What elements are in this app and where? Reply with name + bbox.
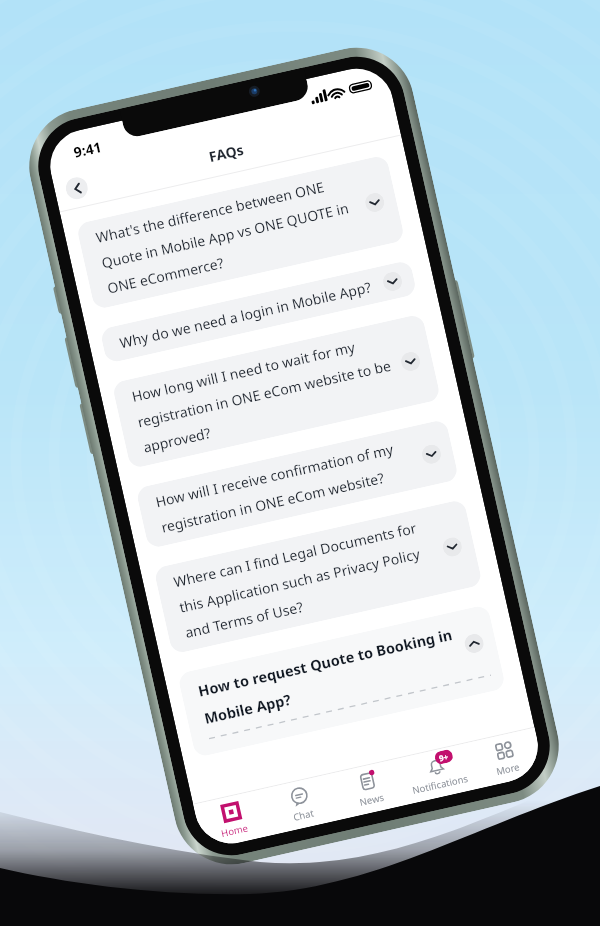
staticText: How long will I need to wait for my regi…: [130, 330, 401, 458]
staticText: Notifications: [411, 772, 469, 797]
button[interactable]: Chat: [261, 774, 340, 835]
staticText: Home: [220, 821, 250, 840]
staticText: How will I receive confirmation of my re…: [154, 435, 419, 538]
staticText: What's the difference between ONE Quote …: [94, 171, 365, 299]
staticText: FAQs: [207, 140, 245, 166]
staticText: More: [495, 760, 521, 778]
button[interactable]: How long will I need to wait for my regi…: [112, 313, 441, 469]
button[interactable]: How to request Quote to Booking in Mobil…: [177, 604, 506, 758]
button[interactable]: 9+: [398, 743, 477, 804]
button[interactable]: Where can I find Legal Documents for thi…: [153, 499, 483, 655]
button[interactable]: What's the difference between ONE Quote …: [76, 154, 405, 310]
staticText: 9+: [438, 750, 450, 763]
button[interactable]: More: [466, 728, 545, 789]
button[interactable]: Why do we need a login in Mobile App?: [99, 260, 417, 364]
button[interactable]: News: [330, 758, 408, 820]
staticText: Chat: [292, 806, 315, 824]
button[interactable]: How will I receive confirmation of my re…: [135, 419, 459, 549]
button[interactable]: Back: [64, 175, 90, 201]
staticText: 9:41: [72, 137, 103, 162]
staticText: How to request Quote to Booking in Mobil…: [196, 623, 462, 728]
staticText: Why do we need a login in Mobile App?: [118, 276, 378, 352]
staticText: Where can I find Legal Documents for thi…: [172, 515, 443, 643]
staticText: News: [358, 791, 386, 809]
button[interactable]: Home: [193, 789, 272, 850]
